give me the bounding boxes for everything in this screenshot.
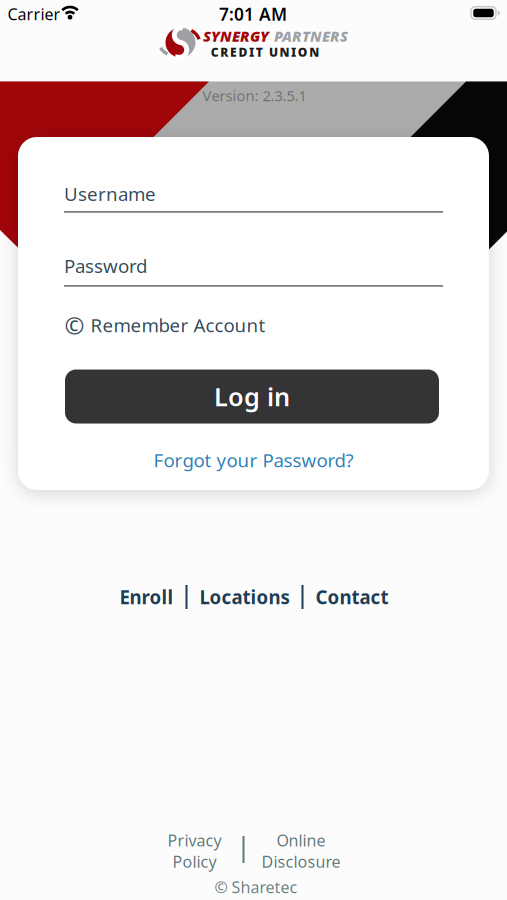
staticText: CREDIT UNION bbox=[211, 44, 319, 60]
button[interactable]: © bbox=[64, 309, 265, 341]
staticText: Username bbox=[64, 181, 156, 206]
button[interactable]: Locations bbox=[199, 585, 289, 609]
button[interactable]: Privacy bbox=[167, 830, 221, 872]
staticText: PARTNERS bbox=[274, 26, 348, 46]
button[interactable]: Log in bbox=[65, 369, 439, 423]
staticText: SYNERGY bbox=[203, 26, 269, 46]
button[interactable]: Contact bbox=[315, 585, 388, 609]
staticText: Remember Account bbox=[90, 313, 265, 337]
button[interactable]: Forgot your Password? bbox=[153, 448, 353, 472]
staticText: Password bbox=[64, 253, 147, 278]
staticText: Privacy bbox=[167, 830, 221, 851]
button[interactable]: Username bbox=[64, 181, 443, 213]
staticText: Online bbox=[276, 830, 325, 851]
staticText: Enroll bbox=[119, 585, 173, 609]
staticText: Log in bbox=[214, 380, 290, 413]
staticText: 7:01 AM bbox=[219, 2, 287, 25]
staticText: Forgot your Password? bbox=[153, 448, 353, 472]
staticText: Policy bbox=[172, 851, 216, 872]
staticText: © Sharetec bbox=[214, 876, 297, 898]
staticText: Disclosure bbox=[261, 851, 340, 872]
button[interactable]: Online bbox=[261, 830, 340, 872]
staticText: Carrier bbox=[7, 3, 60, 25]
staticText: © bbox=[64, 309, 84, 341]
staticText: Locations bbox=[199, 585, 289, 609]
button[interactable]: Enroll bbox=[119, 585, 173, 609]
staticText: Contact bbox=[315, 585, 388, 609]
button[interactable]: Password bbox=[64, 253, 443, 287]
staticText: Version: 2.3.5.1 bbox=[202, 86, 306, 105]
